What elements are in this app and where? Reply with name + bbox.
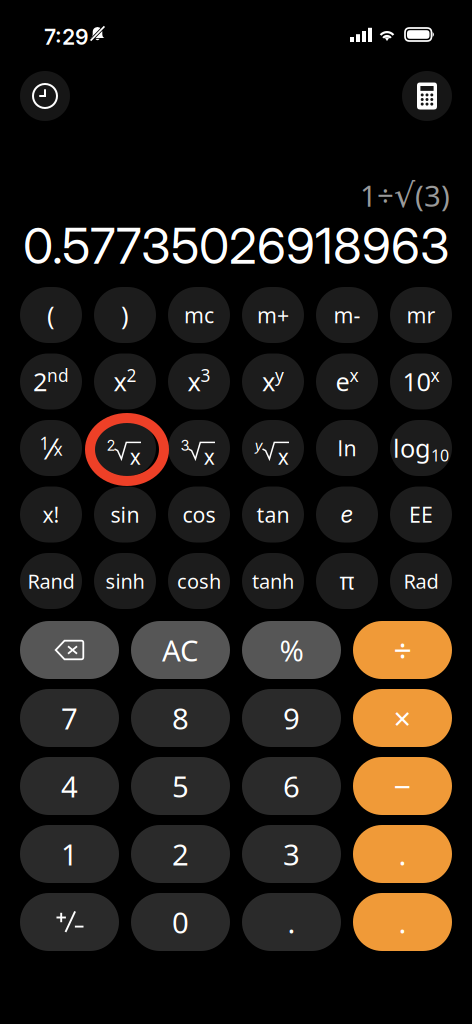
button[interactable]: mc [168,287,230,343]
button[interactable]: cos [168,486,230,542]
staticText: ⁄ [49,428,53,467]
staticText: mc [184,301,214,329]
staticText: mr [406,301,435,329]
staticText: EE [409,500,433,529]
staticText: 9 [283,698,300,737]
button[interactable]: 5 [131,757,230,815]
button[interactable]: ÷ [353,621,452,679]
staticText: x [129,444,141,470]
staticText: − [393,766,411,806]
button[interactable]: x! [20,486,82,542]
button[interactable]: 4 [20,757,119,815]
staticText: . [287,902,295,941]
staticText: 3 [200,364,210,387]
button[interactable]: cosh [168,553,230,609]
staticText: x [277,444,289,470]
staticText: 7 [61,698,78,737]
button[interactable]: y [242,420,304,476]
button[interactable] [20,893,119,951]
button[interactable]: 7 [20,689,119,747]
button[interactable]: x [94,353,156,409]
staticText: 10 [431,445,449,466]
button[interactable]: % [242,621,341,679]
button[interactable]: ln [316,420,378,476]
button[interactable]: mr [390,287,452,343]
staticText: 1 [39,431,49,454]
button[interactable]: 3 [168,420,230,476]
staticText: 7:29 [44,24,89,50]
staticText: cos [182,500,215,529]
button[interactable]: EE [390,486,452,542]
button[interactable]: sinh [94,553,156,609]
button[interactable]: tanh [242,553,304,609]
staticText: m+ [257,301,289,329]
staticText: π [339,566,354,596]
button[interactable]: Rand [20,553,82,609]
staticText: 1 [61,834,78,873]
button[interactable]: 6 [242,757,341,815]
button[interactable]: e [316,486,378,542]
staticText: . [398,902,406,941]
button[interactable]: AC [131,621,230,679]
staticText: tanh [252,568,294,594]
button[interactable]: Rad [390,553,452,609]
button[interactable]: π [316,553,378,609]
button[interactable]: 1 [20,420,82,476]
staticText: x [262,365,275,398]
button[interactable]: − [353,757,452,815]
staticText: x [113,365,126,398]
button[interactable]: . [353,825,452,883]
button[interactable]: 10 [390,353,452,409]
button[interactable]: . [242,893,341,951]
button[interactable]: x [242,353,304,409]
staticText: 5 [172,766,189,805]
staticText: Rad [403,568,438,594]
staticText: ÷ [393,629,411,671]
staticText: (3) [415,176,450,215]
button[interactable]: 2 [94,420,156,476]
staticText: ) [121,298,129,332]
button[interactable]: History [20,71,70,121]
staticText: 2 [106,436,115,454]
button[interactable]: m+ [242,287,304,343]
staticText: 3 [283,834,300,873]
staticText: log [393,431,431,465]
button[interactable]: e [316,353,378,409]
button[interactable]: × [353,689,452,747]
button[interactable]: ( [20,287,82,343]
staticText: 10 [402,365,430,398]
staticText: y [275,364,284,387]
staticText: 3 [180,436,189,454]
button[interactable] [20,621,119,679]
button[interactable]: 8 [131,689,230,747]
staticText: × [393,698,411,738]
staticText: x! [42,500,59,529]
staticText: x [187,365,200,398]
button[interactable]: x [168,353,230,409]
button[interactable]: 2 [131,825,230,883]
staticText: nd [47,364,69,387]
button[interactable]: 9 [242,689,341,747]
staticText: e [335,365,349,398]
button[interactable]: tan [242,486,304,542]
staticText: m- [333,301,360,329]
staticText: e [340,501,353,528]
staticText: 2 [126,364,136,387]
staticText: x [53,437,62,460]
button[interactable]: log [390,420,452,476]
button[interactable]: sin [94,486,156,542]
staticText: sin [110,500,139,529]
staticText: 8 [172,698,189,737]
staticText: x [203,444,215,470]
button[interactable]: 2 [20,353,82,409]
staticText: 4 [61,766,78,805]
staticText: 2 [172,834,189,873]
button[interactable]: ) [94,287,156,343]
button[interactable]: 0 [131,893,230,951]
button[interactable]: . [353,893,452,951]
button[interactable]: m- [316,287,378,343]
button[interactable]: 3 [242,825,341,883]
staticText: 1÷ [360,176,394,215]
button[interactable]: Calculator mode [402,71,452,121]
button[interactable]: 1 [20,825,119,883]
